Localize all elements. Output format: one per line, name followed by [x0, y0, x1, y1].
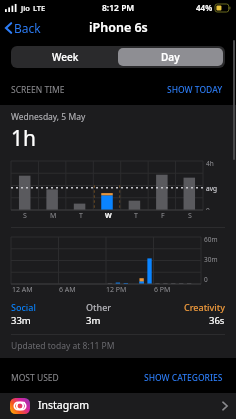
staticText: T: [79, 211, 83, 221]
staticText: 8:12 PM: [102, 2, 135, 14]
staticText: avg: [206, 184, 217, 193]
staticText: 4h: [206, 159, 214, 168]
staticText: S: [23, 211, 27, 221]
staticText: S: [188, 211, 192, 221]
staticText: 6 PM: [154, 285, 171, 295]
staticText: 12 PM: [106, 285, 127, 295]
staticText: iPhone 6s: [89, 19, 148, 36]
button[interactable]: SHOW TODAY: [165, 82, 225, 98]
other: Open details: [222, 401, 228, 411]
staticText: 12 AM: [12, 285, 33, 295]
staticText: T: [134, 211, 138, 221]
staticText: 33m: [11, 314, 31, 327]
staticText: Wednesday, 5 May: [11, 111, 86, 123]
staticText: 6 AM: [59, 285, 76, 295]
staticText: Back: [14, 20, 41, 36]
staticText: 36s: [209, 314, 225, 327]
staticText: SHOW CATEGORIES: [144, 372, 223, 384]
staticText: 3m: [86, 314, 101, 327]
button[interactable]: Instagram: [0, 393, 236, 419]
staticText: Week: [52, 50, 79, 64]
staticText: Updated today at 8:11 PM: [11, 340, 115, 352]
staticText: 0: [204, 275, 208, 284]
staticText: SHOW TODAY: [167, 84, 223, 96]
staticText: Instagram: [38, 398, 90, 412]
staticText: Other: [86, 301, 112, 313]
button[interactable]: SHOW CATEGORIES: [142, 370, 225, 386]
staticText: M: [50, 211, 57, 221]
staticText: LTE: [33, 3, 46, 13]
staticText: 30m: [204, 255, 218, 264]
staticText: 0: [206, 206, 210, 210]
staticText: SCREEN TIME: [11, 84, 65, 96]
staticText: MOST USED: [11, 372, 59, 384]
staticText: 60m: [204, 235, 218, 244]
staticText: Social: [11, 301, 36, 313]
staticText: Creativity: [184, 301, 225, 313]
staticText: 1h: [11, 124, 36, 153]
button[interactable]: Day: [118, 48, 223, 66]
staticText: W: [105, 211, 112, 221]
staticText: Day: [161, 50, 180, 64]
staticText: 44%: [196, 2, 213, 13]
staticText: F: [161, 211, 165, 221]
staticText: Jio: [21, 3, 30, 13]
button[interactable]: Week: [13, 48, 118, 66]
button[interactable]: Back: [0, 16, 49, 40]
